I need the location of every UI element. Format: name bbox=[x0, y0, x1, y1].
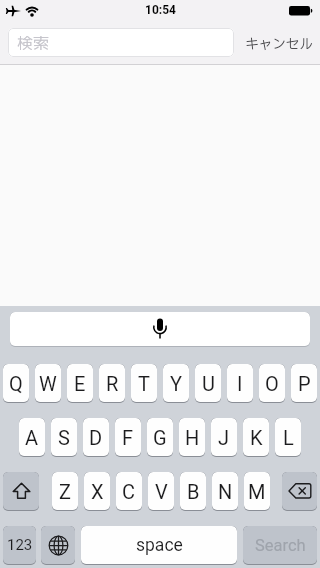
button[interactable]: K bbox=[243, 418, 269, 456]
staticText: A bbox=[25, 426, 39, 449]
button[interactable]: Z bbox=[52, 472, 78, 510]
staticText: space bbox=[136, 535, 183, 556]
button[interactable]: I bbox=[227, 364, 253, 402]
button[interactable]: B bbox=[180, 472, 206, 510]
staticText: 検索 bbox=[17, 32, 50, 56]
button[interactable]: N bbox=[212, 472, 238, 510]
button[interactable] bbox=[3, 472, 39, 510]
button[interactable]: A bbox=[19, 418, 45, 456]
button[interactable]: O bbox=[259, 364, 285, 402]
staticText: G bbox=[153, 426, 167, 449]
staticText: P bbox=[298, 372, 311, 395]
button[interactable]: space bbox=[81, 526, 237, 564]
staticText: F bbox=[122, 426, 134, 449]
staticText: S bbox=[58, 426, 70, 449]
staticText: N bbox=[218, 480, 233, 503]
staticText: Y bbox=[170, 372, 183, 395]
staticText: M bbox=[248, 480, 266, 503]
button[interactable] bbox=[10, 312, 310, 346]
staticText: X bbox=[91, 480, 104, 503]
button[interactable]: J bbox=[211, 418, 237, 456]
button[interactable]: U bbox=[195, 364, 221, 402]
staticText: R bbox=[106, 372, 119, 395]
button[interactable] bbox=[41, 526, 75, 564]
staticText: L bbox=[283, 426, 294, 449]
button[interactable]: S bbox=[51, 418, 77, 456]
staticText: 123 bbox=[7, 536, 33, 554]
button[interactable]: 123 bbox=[3, 526, 36, 564]
staticText: B bbox=[187, 480, 200, 503]
button[interactable]: キャンセル bbox=[243, 26, 315, 62]
staticText: E bbox=[74, 372, 86, 395]
staticText: Search bbox=[255, 536, 306, 555]
button[interactable]: D bbox=[83, 418, 109, 456]
staticText: I bbox=[237, 372, 243, 395]
button[interactable]: V bbox=[148, 472, 174, 510]
button[interactable]: G bbox=[147, 418, 173, 456]
staticText: V bbox=[155, 480, 168, 503]
button[interactable]: H bbox=[179, 418, 205, 456]
staticText: O bbox=[265, 372, 279, 395]
staticText: キャンセル bbox=[245, 34, 313, 55]
button[interactable]: M bbox=[244, 472, 270, 510]
staticText: J bbox=[218, 426, 230, 449]
staticText: D bbox=[89, 426, 103, 449]
button[interactable] bbox=[282, 472, 317, 510]
staticText: C bbox=[122, 480, 136, 503]
button[interactable]: P bbox=[291, 364, 317, 402]
button[interactable]: W bbox=[35, 364, 61, 402]
staticText: T bbox=[138, 372, 150, 395]
button[interactable]: Search bbox=[243, 526, 317, 564]
button[interactable]: T bbox=[131, 364, 157, 402]
staticText: W bbox=[39, 372, 57, 395]
staticText: Z bbox=[59, 480, 71, 503]
staticText: 10:54 bbox=[145, 3, 176, 17]
button[interactable]: X bbox=[84, 472, 110, 510]
button[interactable]: F bbox=[115, 418, 141, 456]
staticText: H bbox=[185, 426, 200, 449]
staticText: Q bbox=[9, 372, 23, 395]
button[interactable]: Y bbox=[163, 364, 189, 402]
button[interactable]: C bbox=[116, 472, 142, 510]
staticText: K bbox=[250, 426, 263, 449]
button[interactable]: R bbox=[99, 364, 125, 402]
staticText: U bbox=[202, 372, 215, 395]
button[interactable]: Q bbox=[3, 364, 29, 402]
button[interactable]: 検索 bbox=[8, 28, 234, 57]
button[interactable]: L bbox=[275, 418, 301, 456]
button[interactable]: E bbox=[67, 364, 93, 402]
